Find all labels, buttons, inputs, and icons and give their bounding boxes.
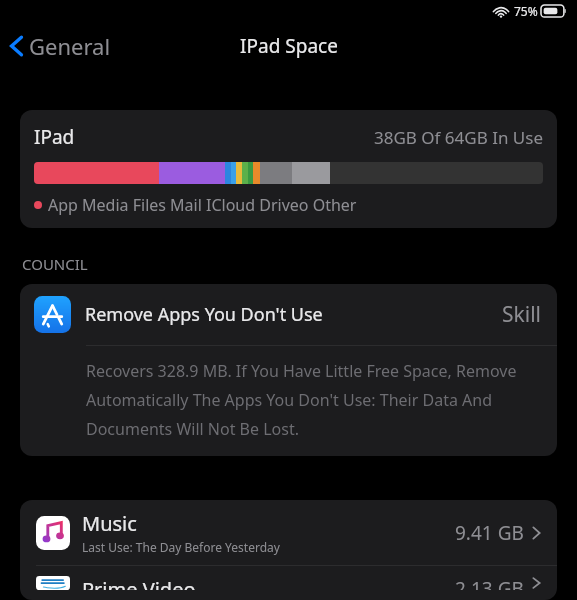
button[interactable]: Music	[20, 500, 557, 565]
staticText: 75%	[514, 3, 538, 19]
button[interactable]: App Store	[20, 284, 557, 456]
staticText: General	[29, 31, 111, 61]
staticText: Recovers 328.9 MB. If You Have Little Fr…	[86, 360, 517, 382]
staticText: Automatically The Apps You Don't Use: Th…	[86, 389, 493, 411]
button[interactable]: General	[0, 25, 123, 67]
staticText: COUNCIL	[22, 254, 88, 274]
staticText: IPad	[34, 124, 75, 150]
staticText: 2.13 GB	[455, 576, 524, 590]
button[interactable]: IPad	[20, 110, 557, 228]
staticText: App Media Files Mail ICloud Driveo Other	[48, 194, 357, 216]
staticText: 9.41 GB	[455, 520, 524, 546]
staticText: IPad Space	[240, 33, 338, 59]
staticText: Remove Apps You Don't Use	[85, 302, 323, 327]
other: App Store	[34, 296, 71, 333]
staticText: Skill	[502, 300, 541, 329]
other: Music	[36, 516, 70, 550]
other: Prime Video	[36, 576, 70, 590]
staticText: Documents Will Not Be Lost.	[86, 418, 299, 440]
staticText: Prime Video	[82, 576, 196, 590]
staticText: Last Use: The Day Before Yesterday	[82, 539, 280, 555]
staticText: 38GB Of 64GB In Use	[374, 126, 543, 149]
staticText: Music	[82, 510, 137, 537]
button[interactable]: Prime Video	[20, 566, 557, 600]
